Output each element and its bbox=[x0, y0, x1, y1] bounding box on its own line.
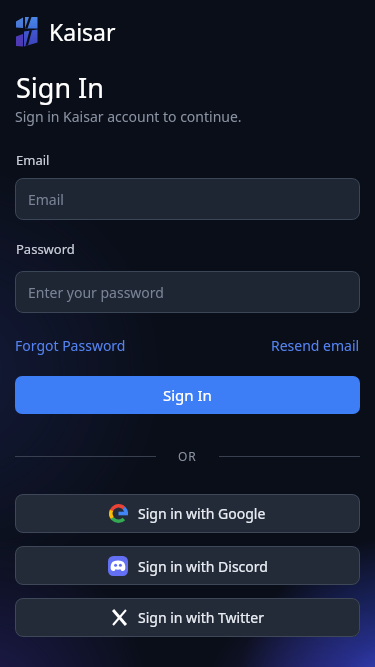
button[interactable]: Enter your password bbox=[15, 271, 360, 313]
button[interactable]: Forgot Password bbox=[15, 336, 126, 355]
button[interactable]: Sign in with Twitter bbox=[15, 598, 360, 637]
staticText: Enter your password bbox=[28, 283, 164, 302]
button[interactable]: Sign in with Discord bbox=[15, 546, 360, 585]
staticText: Kaisar bbox=[49, 16, 116, 47]
staticText: Sign In bbox=[16, 69, 104, 106]
staticText: Email bbox=[16, 151, 50, 169]
button[interactable]: Sign In bbox=[15, 376, 360, 414]
staticText: Sign in with Google bbox=[138, 504, 266, 523]
staticText: Sign In bbox=[163, 385, 212, 405]
staticText: Sign in with Twitter bbox=[138, 608, 264, 627]
staticText: Sign in with Discord bbox=[138, 557, 268, 576]
staticText: Password bbox=[16, 240, 75, 258]
staticText: OR bbox=[178, 448, 197, 464]
button[interactable]: Email bbox=[15, 178, 360, 220]
button[interactable]: Resend email bbox=[271, 336, 360, 355]
staticText: Sign in Kaisar account to continue. bbox=[15, 107, 242, 126]
button[interactable]: Sign in with Google bbox=[15, 494, 360, 533]
staticText: Email bbox=[28, 190, 64, 209]
